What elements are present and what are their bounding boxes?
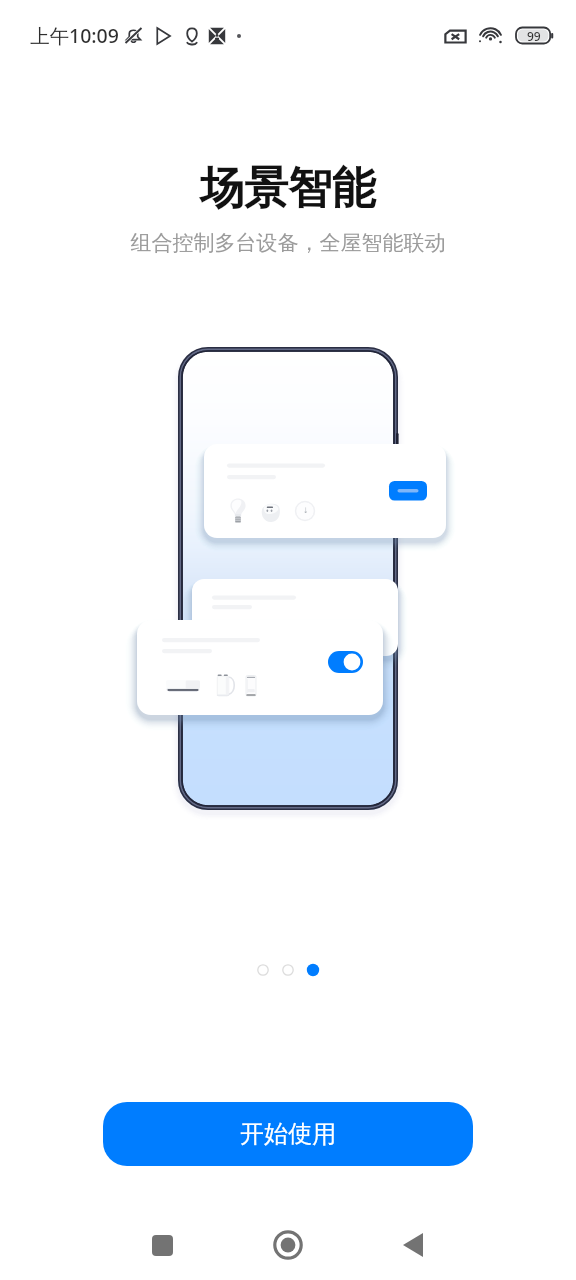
button[interactable]: 开始使用 — [103, 1102, 473, 1166]
staticText: 99 — [527, 28, 541, 44]
button[interactable]: Back — [381, 1213, 445, 1277]
staticText: 场景智能 — [0, 161, 576, 216]
staticText: 开始使用 — [240, 1119, 336, 1149]
button[interactable]: Home — [256, 1213, 320, 1277]
staticText: 上午10:09 — [30, 22, 119, 49]
staticText: 组合控制多台设备，全屋智能联动 — [0, 230, 576, 256]
button[interactable]: Recent apps — [130, 1213, 194, 1277]
